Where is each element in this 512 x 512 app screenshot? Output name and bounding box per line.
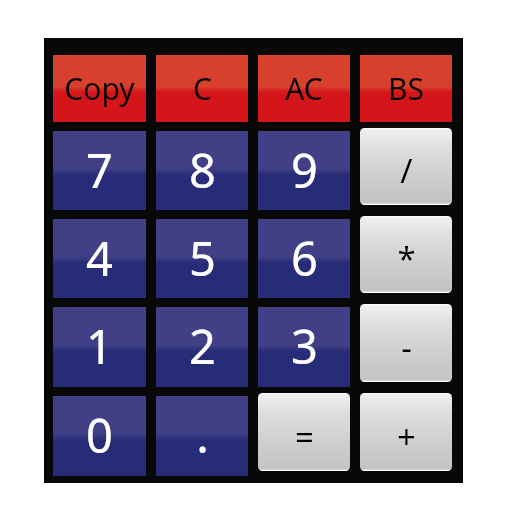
staticText: 9 xyxy=(291,138,318,202)
staticText: * xyxy=(397,236,416,281)
staticText: AC xyxy=(285,68,323,109)
button[interactable]: BS xyxy=(360,55,452,122)
staticText: 5 xyxy=(189,226,216,290)
button[interactable]: C xyxy=(156,55,248,122)
staticText: = xyxy=(295,414,314,459)
staticText: 2 xyxy=(189,314,216,378)
button[interactable]: 3 xyxy=(258,307,350,387)
button[interactable]: Multiply xyxy=(360,216,452,293)
button[interactable]: 9 xyxy=(258,131,350,210)
button[interactable]: 4 xyxy=(53,219,146,298)
staticText: 1 xyxy=(86,314,113,378)
staticText: 7 xyxy=(86,138,113,202)
button[interactable]: Add xyxy=(360,393,452,471)
staticText: . xyxy=(196,403,209,467)
button[interactable]: AC xyxy=(258,55,350,122)
staticText: 6 xyxy=(291,226,318,290)
button[interactable]: 7 xyxy=(53,131,146,210)
button[interactable]: 6 xyxy=(258,219,350,298)
button[interactable]: 1 xyxy=(53,307,146,387)
button[interactable]: 0 xyxy=(53,396,146,476)
staticText: - xyxy=(401,325,412,370)
button[interactable]: Decimal point xyxy=(156,396,248,476)
staticText: 4 xyxy=(86,226,113,290)
staticText: C xyxy=(193,68,212,109)
button[interactable]: 2 xyxy=(156,307,248,387)
button[interactable]: Equals xyxy=(258,393,350,471)
staticText: Copy xyxy=(64,68,135,109)
button[interactable]: 8 xyxy=(156,131,248,210)
button[interactable]: Divide xyxy=(360,128,452,205)
staticText: / xyxy=(400,148,413,193)
staticText: 3 xyxy=(291,314,318,378)
staticText: 0 xyxy=(86,403,113,467)
button[interactable]: Subtract xyxy=(360,304,452,382)
staticText: 8 xyxy=(189,138,216,202)
button[interactable]: 5 xyxy=(156,219,248,298)
button[interactable]: Copy xyxy=(53,55,146,122)
staticText: BS xyxy=(388,68,424,109)
staticText: + xyxy=(397,414,416,459)
